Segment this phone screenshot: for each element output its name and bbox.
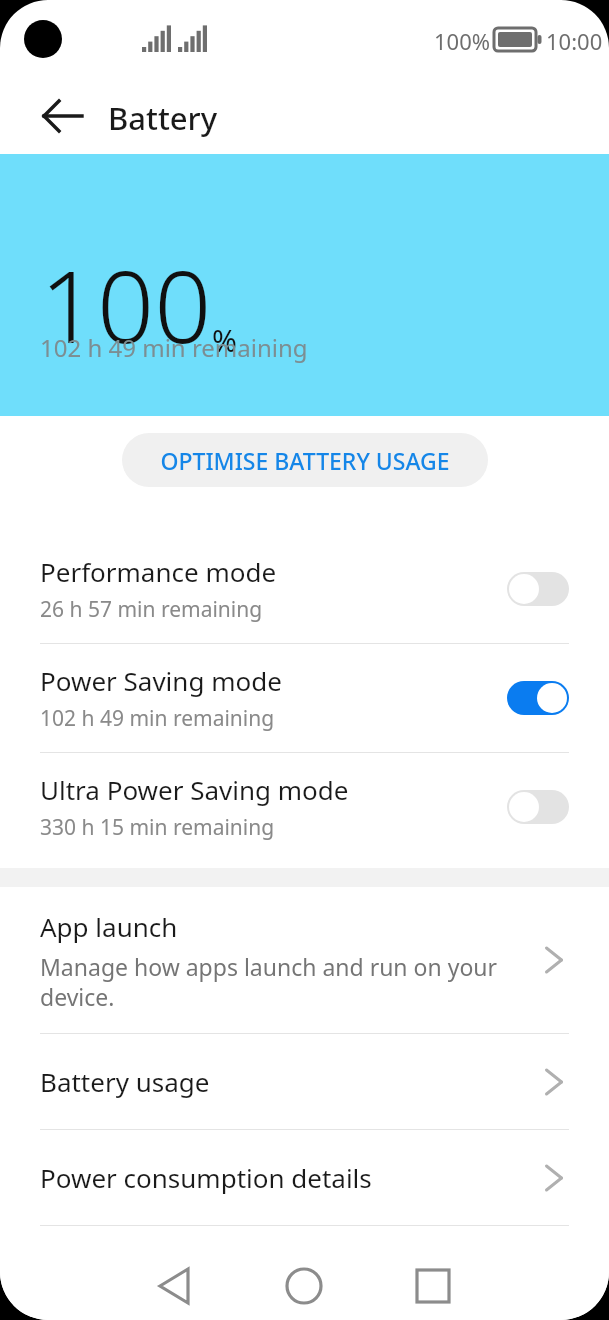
staticText: 100 [40, 236, 212, 372]
staticText: % [212, 320, 237, 361]
staticText: Power consumption details [40, 1160, 539, 1195]
button[interactable]: Power Saving mode [0, 644, 609, 752]
staticText: 102 h 49 min remaining [40, 704, 275, 733]
button[interactable]: Power consumption details [0, 1130, 609, 1225]
button[interactable]: Home [274, 1253, 334, 1320]
button[interactable]: Battery percentage [0, 1226, 609, 1320]
staticText: App launch [40, 909, 178, 944]
staticText: 10:00 [546, 26, 603, 56]
button[interactable]: Battery usage [0, 1034, 609, 1129]
staticText: 100% [434, 26, 491, 56]
staticText: Battery [108, 97, 218, 139]
other: Performance mode [507, 572, 569, 606]
button[interactable]: Performance mode [0, 535, 609, 643]
button[interactable]: Ultra Power Saving mode [0, 753, 609, 861]
staticText: 102 h 49 min remaining [40, 331, 308, 364]
button[interactable]: Back [30, 92, 78, 140]
staticText: Battery usage [40, 1064, 539, 1099]
staticText: 26 h 57 min remaining [40, 595, 263, 624]
other: Ultra Power Saving mode [507, 790, 569, 824]
staticText: Ultra Power Saving mode [40, 772, 349, 807]
other: Power Saving mode [507, 681, 569, 715]
staticText: Manage how apps launch and run on your d… [40, 951, 523, 1012]
staticText: Power Saving mode [40, 663, 282, 698]
button[interactable]: App launch [0, 887, 609, 1033]
button[interactable]: Back [145, 1253, 609, 1320]
staticText: Performance mode [40, 554, 277, 589]
staticText: Battery percentage [40, 1270, 452, 1305]
staticText: OPTIMISE BATTERY USAGE [160, 445, 450, 476]
button[interactable]: Recents [403, 1253, 463, 1320]
button[interactable]: OPTIMISE BATTERY USAGE [122, 433, 488, 487]
staticText: 330 h 15 min remaining [40, 813, 275, 842]
